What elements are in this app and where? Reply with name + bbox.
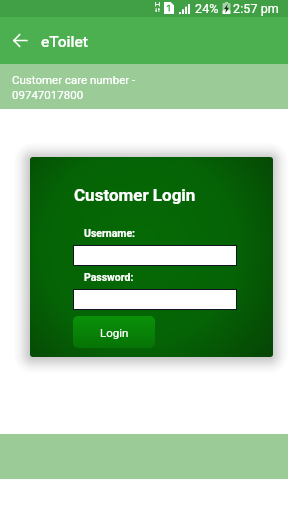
staticText: Login [100,326,129,339]
staticText: eToilet [41,33,88,51]
staticText: 09747017800 [12,88,84,101]
staticText: 2:57 pm [233,1,279,16]
staticText: Password: [84,271,134,283]
button[interactable]: Login [73,316,155,348]
staticText: Username: [84,227,136,239]
staticText: Customer care number - [12,73,136,86]
staticText: 24% [195,1,219,16]
staticText: Customer Login [74,185,196,205]
button[interactable]: Back [6,17,34,64]
